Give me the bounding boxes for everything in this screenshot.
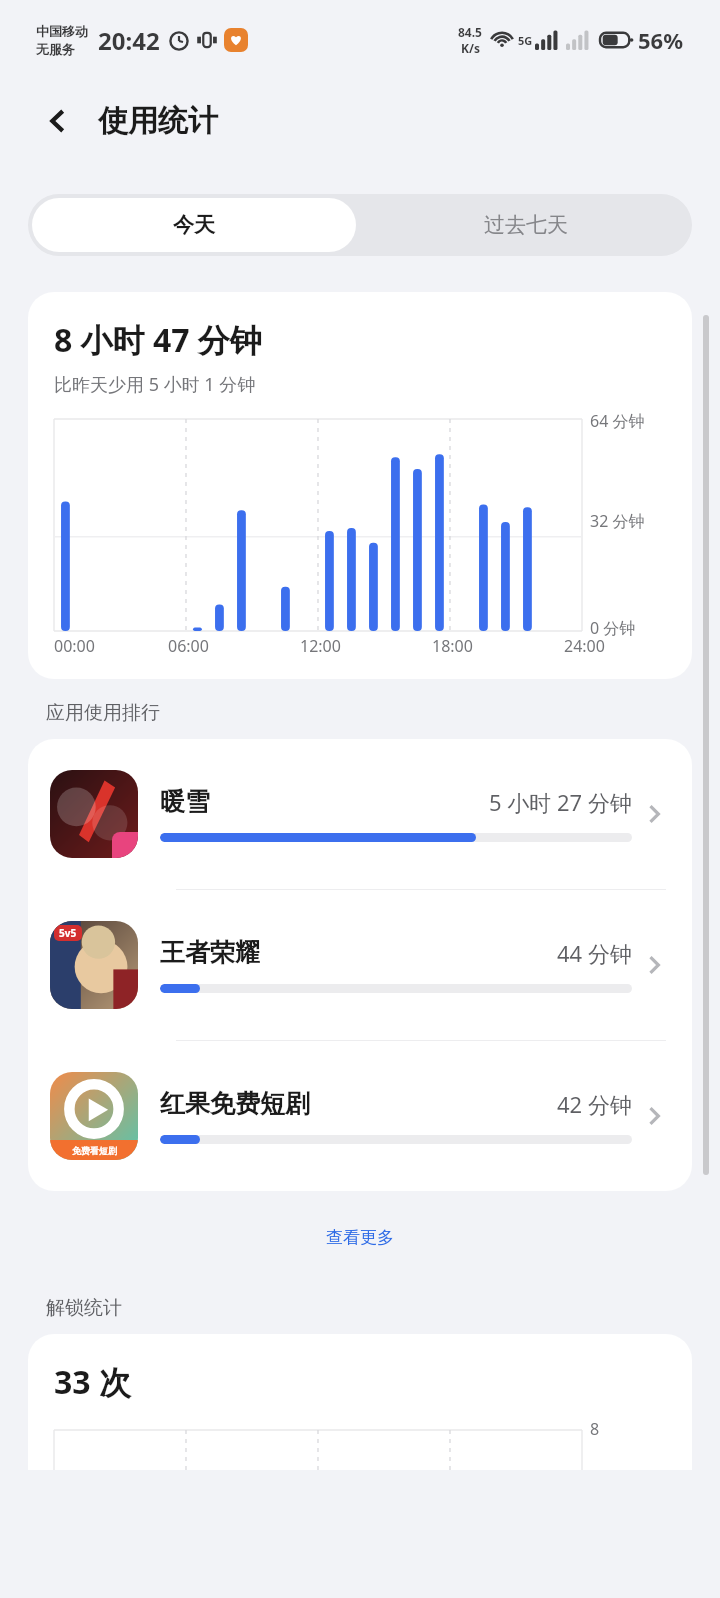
staticText: 免费看短剧 [72, 1145, 117, 1156]
staticText: 44 分钟 [557, 938, 632, 968]
staticText: 暖雪 [160, 786, 210, 817]
staticText: 84.5 [458, 24, 482, 40]
staticText: 33 次 [54, 1360, 131, 1404]
staticText: 无服务 [36, 41, 75, 57]
staticText: 使用统计 [98, 102, 218, 140]
button[interactable]: 5v5 [28, 890, 692, 1040]
staticText: 12:00 [300, 635, 341, 657]
button[interactable]: 暖雪 [28, 739, 692, 889]
staticText: 王者荣耀 [160, 937, 260, 968]
button[interactable]: 今天 [32, 198, 356, 252]
staticText: 24:00 [564, 635, 605, 657]
staticText: 06:00 [168, 635, 209, 657]
button[interactable]: 过去七天 [360, 194, 692, 256]
staticText: 8 [590, 1418, 600, 1440]
staticText: 过去七天 [484, 212, 568, 238]
staticText: 红果免费短剧 [160, 1088, 310, 1119]
button[interactable]: 查看更多 [0, 1217, 720, 1258]
staticText: 8 小时 47 分钟 [54, 318, 262, 362]
staticText: 20:42 [98, 24, 160, 57]
staticText: 查看更多 [326, 1227, 394, 1248]
staticText: 中国移动 [36, 23, 88, 39]
button[interactable]: 免费看短剧 [28, 1041, 692, 1191]
button[interactable]: 返回 [30, 93, 86, 149]
staticText: K/s [461, 40, 480, 56]
staticText: 64 分钟 [590, 410, 645, 432]
staticText: 5 小时 27 分钟 [489, 787, 632, 817]
staticText: 5v5 [59, 926, 77, 940]
staticText: 0 分钟 [590, 617, 636, 639]
staticText: 56% [638, 25, 684, 55]
staticText: 00:00 [54, 635, 95, 657]
staticText: 5G [518, 33, 533, 48]
staticText: 应用使用排行 [46, 701, 160, 725]
staticText: 解锁统计 [46, 1296, 122, 1320]
staticText: 比昨天少用 5 小时 1 分钟 [54, 372, 256, 397]
staticText: 18:00 [432, 635, 473, 657]
staticText: 今天 [173, 212, 215, 238]
button[interactable]: 33 次 [28, 1334, 692, 1470]
staticText: 32 分钟 [590, 510, 645, 532]
staticText: 42 分钟 [557, 1089, 632, 1119]
button[interactable]: 8 小时 47 分钟 [28, 292, 692, 679]
